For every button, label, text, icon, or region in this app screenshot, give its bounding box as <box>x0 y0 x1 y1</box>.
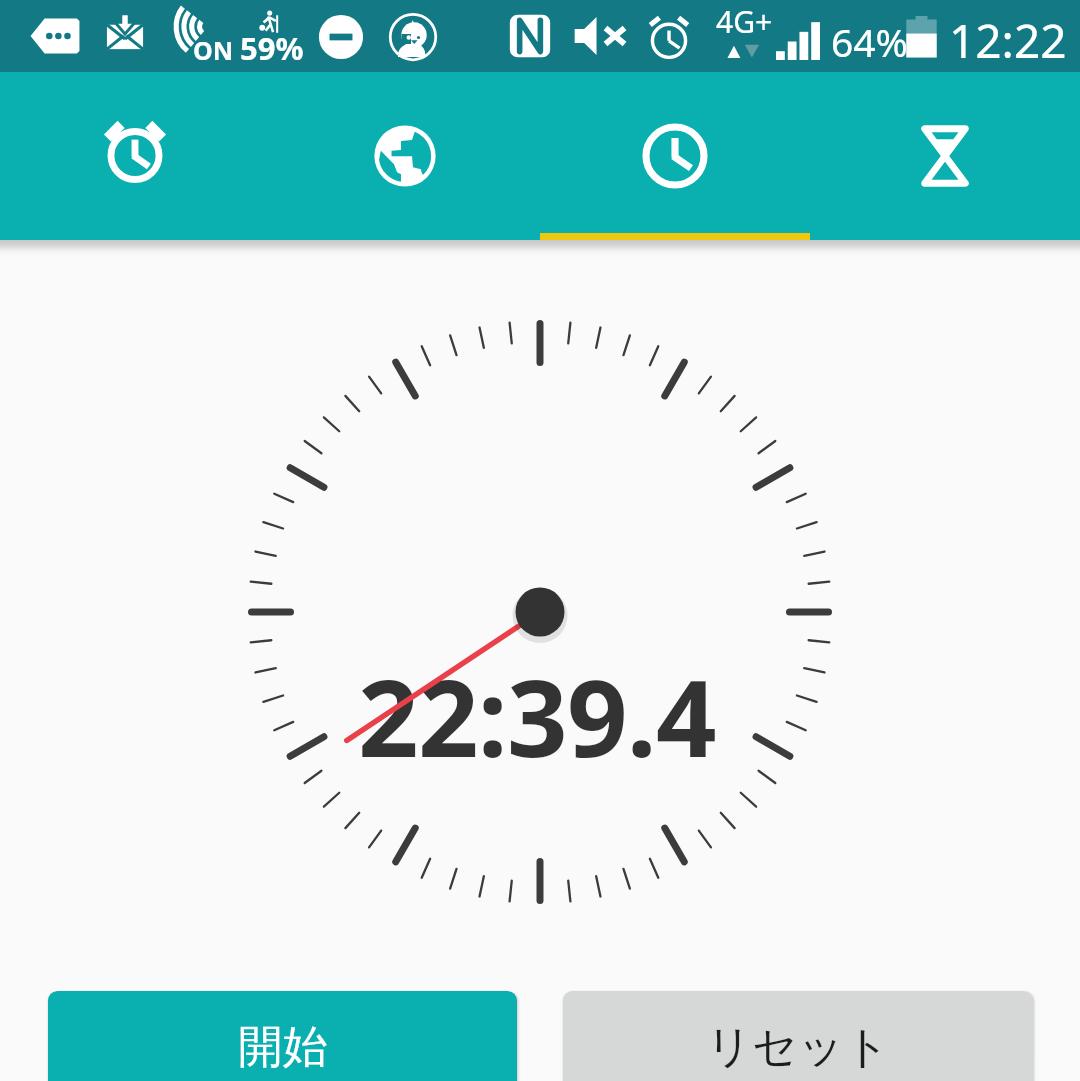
button[interactable]: World clock <box>270 72 540 240</box>
staticText: リセット <box>706 1019 891 1076</box>
staticText: 開始 <box>238 1019 328 1076</box>
button[interactable]: Timer <box>810 72 1080 240</box>
button[interactable]: 開始 <box>48 991 517 1081</box>
staticText: ON <box>193 33 234 67</box>
staticText: 4G+ <box>716 1 773 42</box>
staticText: 59% <box>240 27 304 69</box>
staticText: 12:22 <box>949 9 1067 72</box>
staticText: 64% <box>831 15 909 68</box>
button[interactable]: Stopwatch <box>540 72 810 240</box>
button[interactable]: リセット <box>563 991 1033 1081</box>
button[interactable]: Alarm <box>0 72 270 240</box>
staticText: 22:39.4 <box>358 644 716 788</box>
